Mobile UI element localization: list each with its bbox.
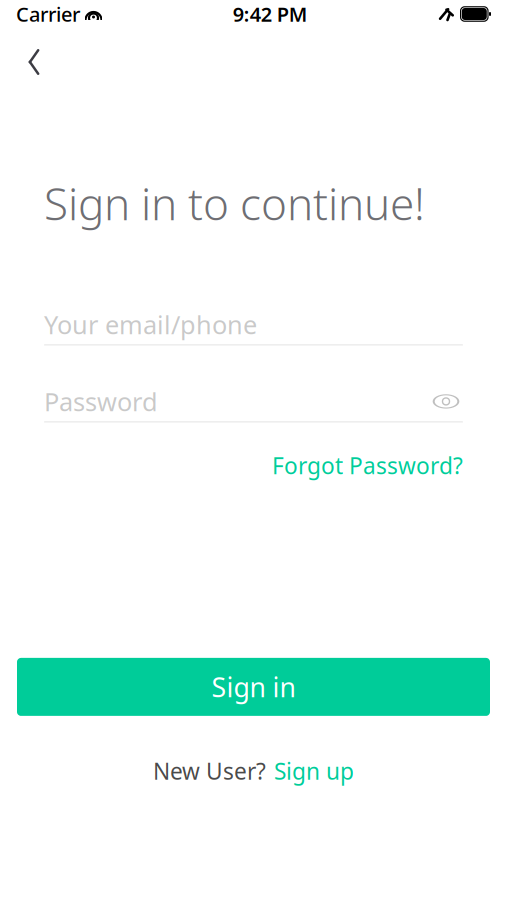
- staticText: 9:42 PM: [233, 1, 308, 27]
- staticText: Password: [44, 385, 158, 418]
- staticText: Sign in to continue!: [44, 174, 425, 232]
- staticText: Sign in: [211, 669, 295, 705]
- staticText: New User?: [153, 756, 266, 786]
- button[interactable]: Show password: [429, 384, 463, 418]
- button[interactable]: Sign in: [17, 658, 490, 716]
- staticText: Carrier: [16, 1, 80, 27]
- button[interactable]: Sign up: [274, 752, 354, 790]
- button[interactable]: Back: [12, 40, 56, 84]
- staticText: Your email/phone: [44, 308, 257, 341]
- staticText: Sign up: [274, 756, 354, 786]
- staticText: Forgot Password?: [272, 450, 463, 480]
- button[interactable]: Forgot Password?: [272, 446, 463, 484]
